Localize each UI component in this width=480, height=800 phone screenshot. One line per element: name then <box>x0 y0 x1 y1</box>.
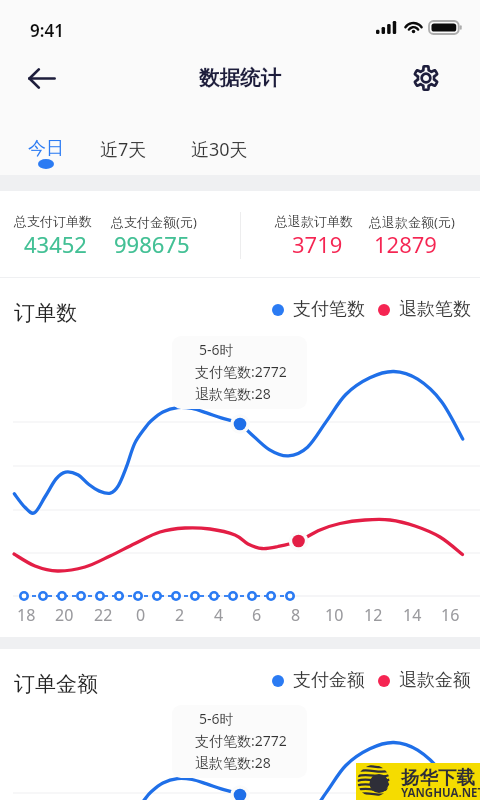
staticText: 订单金额 <box>14 671 98 697</box>
staticText: 4 <box>214 604 224 626</box>
staticText: 10 <box>325 604 344 626</box>
staticText: 20 <box>55 604 74 626</box>
button[interactable]: 近7天 <box>90 128 157 181</box>
button[interactable]: Back <box>20 56 64 100</box>
staticText: 近30天 <box>191 137 248 162</box>
staticText: 近7天 <box>100 137 147 162</box>
button[interactable]: 近30天 <box>181 128 258 181</box>
staticText: 18 <box>17 604 36 626</box>
staticText: 8 <box>291 604 301 626</box>
staticText: 16 <box>441 604 460 626</box>
staticText: 998675 <box>114 229 190 259</box>
staticText: 退款笔数:28 <box>195 384 271 403</box>
staticText: 5-6时 <box>199 709 234 728</box>
staticText: 支付笔数 <box>293 298 365 321</box>
button[interactable]: Settings <box>404 56 448 100</box>
staticText: 6 <box>252 604 262 626</box>
staticText: 退款金额 <box>399 669 471 692</box>
staticText: YANGHUA.NET <box>401 785 480 800</box>
button[interactable]: 退款金额 <box>378 669 471 692</box>
button[interactable]: 退款笔数 <box>378 298 471 321</box>
staticText: 9:41 <box>30 19 64 42</box>
staticText: 支付笔数:2772 <box>195 362 287 381</box>
staticText: 支付金额 <box>293 669 365 692</box>
staticText: 43452 <box>24 229 87 259</box>
button[interactable]: 今日 <box>18 128 74 179</box>
staticText: 退款笔数:28 <box>195 753 271 772</box>
staticText: 12 <box>364 604 383 626</box>
staticText: 3719 <box>292 229 343 259</box>
button[interactable]: 支付金额 <box>272 669 365 692</box>
staticText: 22 <box>94 604 113 626</box>
staticText: 总支付订单数 <box>14 213 92 229</box>
staticText: 5-6时 <box>199 340 234 359</box>
staticText: 2 <box>175 604 185 626</box>
staticText: 总退款金额(元) <box>369 213 455 231</box>
staticText: 退款笔数 <box>399 298 471 321</box>
staticText: 0 <box>136 604 146 626</box>
staticText: 14 <box>403 604 422 626</box>
staticText: 数据统计 <box>199 65 281 91</box>
button[interactable]: 支付笔数 <box>272 298 365 321</box>
staticText: 总支付金额(元) <box>111 213 197 231</box>
staticText: 12879 <box>374 229 437 259</box>
staticText: 今日 <box>28 137 64 160</box>
staticText: 订单数 <box>14 300 77 326</box>
staticText: 总退款订单数 <box>275 213 353 229</box>
staticText: 支付笔数:2772 <box>195 731 287 750</box>
staticText: 扬华下载 <box>401 766 475 789</box>
